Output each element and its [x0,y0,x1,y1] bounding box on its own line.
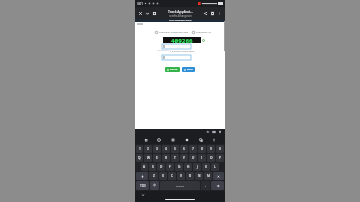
button[interactable]: B [186,172,194,180]
button[interactable]: Tabs [151,7,158,19]
button[interactable] [162,44,191,49]
button[interactable]: L [211,163,219,171]
button[interactable]: 1 [136,145,143,153]
button[interactable]: Emoji keyboard [150,181,159,190]
button[interactable]: ?123 [136,181,149,190]
button[interactable]: Voice input [211,137,217,143]
button[interactable]: V [177,172,185,180]
button[interactable]: C [168,172,176,180]
button[interactable]: K [202,163,210,171]
button[interactable]: Undo [205,129,211,135]
button[interactable]: Resize keyboard [211,129,217,135]
button[interactable]: Submit [165,67,180,72]
staticText: 5 [174,147,176,151]
staticText: 4 [165,147,167,151]
staticText: Application Nu [196,31,212,34]
button[interactable]: Translate [198,137,204,143]
button[interactable]: Enter [211,181,224,190]
button[interactable]: Close [137,7,144,19]
staticText: 3 [156,147,158,151]
button[interactable]: W [144,154,152,162]
button[interactable]: 0 [216,145,224,153]
staticText: C [171,174,174,178]
button[interactable]: More options [216,7,223,19]
staticText: T [174,156,176,160]
button[interactable]: X [159,172,167,180]
staticText: S [152,165,154,169]
staticText: 3:01 [137,2,143,6]
staticText: 1 [139,147,141,151]
button[interactable] [162,55,191,60]
staticText: Submit [170,68,178,71]
button[interactable]: A [141,163,148,171]
button[interactable]: N [195,172,203,180]
staticText: P [219,156,221,160]
button[interactable]: Reset [182,67,195,72]
staticText: U [192,156,195,160]
staticText: M [207,174,210,178]
button[interactable]: Bookmark [209,7,216,19]
button[interactable]: Z [149,172,158,180]
button[interactable]: 8 [198,145,206,153]
button[interactable]: M [204,172,212,180]
button[interactable]: 2 [144,145,152,153]
button[interactable]: O [207,154,215,162]
button[interactable]: U [189,154,197,162]
staticText: O [210,156,213,160]
button[interactable]: English [160,181,200,190]
button[interactable]: Hide keyboard [140,192,145,197]
staticText: E [156,156,158,160]
staticText: 7 [192,147,194,151]
button[interactable]: 5 [171,145,179,153]
button[interactable]: R [162,154,170,162]
button[interactable]: Backspace [213,172,224,180]
button[interactable]: 7 [189,145,197,153]
button[interactable]: E [153,154,161,162]
staticText: Y [183,156,185,160]
button[interactable]: 3 [153,145,161,153]
staticText: B [189,174,192,178]
staticText: F [169,165,171,169]
staticText: Q [138,156,141,160]
button[interactable]: 9 [207,145,215,153]
button[interactable]: 4 [162,145,170,153]
staticText: Track Applicat… [168,9,193,14]
button[interactable]: F [166,163,174,171]
button[interactable]: Y [180,154,188,162]
button[interactable]: G [175,163,183,171]
staticText: G [178,165,181,169]
staticText: A [143,165,146,169]
button[interactable]: Settings [170,137,176,143]
button[interactable]: Clipboard [143,137,149,143]
staticText: ?123 [140,184,146,188]
button[interactable]: D [157,163,165,171]
button[interactable]: Application Submission Date [155,31,189,34]
button[interactable]: Share [202,7,209,19]
staticText: Reset [187,68,193,71]
button[interactable]: Keyboard settings [217,129,223,135]
button[interactable]: J [193,163,201,171]
staticText: 0 [219,147,221,151]
staticText: X [162,174,164,178]
button[interactable]: Application Nu [192,31,212,34]
button[interactable]: T [171,154,179,162]
staticText: e characters shown above [170,50,195,53]
button[interactable]: S [149,163,156,171]
staticText: 9 [210,147,212,151]
staticText: K [205,165,207,169]
button[interactable]: I [198,154,206,162]
button[interactable]: H [184,163,192,171]
button[interactable]: Period [201,181,210,190]
button[interactable]: Downloads [144,7,151,19]
staticText: 2 [147,147,149,151]
button[interactable]: Q [136,154,143,162]
staticText: D [160,165,163,169]
button[interactable]: Emoji [156,137,162,143]
staticText: scmfts.bihar.gov.in [169,14,192,18]
button[interactable]: 6 [180,145,188,153]
button[interactable]: Stickers [184,137,190,143]
button[interactable]: Track Applicat… [159,9,201,18]
button[interactable]: P [216,154,224,162]
button[interactable]: Shift [136,172,148,180]
